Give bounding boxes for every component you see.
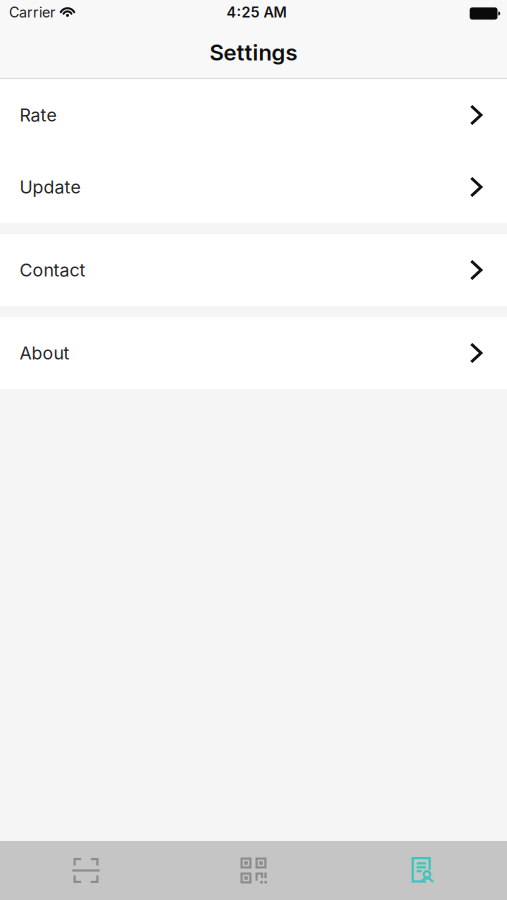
staticText: About: [19, 342, 69, 364]
button[interactable]: History: [338, 841, 507, 900]
button[interactable]: Scan: [0, 841, 169, 900]
staticText: Contact: [19, 259, 85, 281]
button[interactable]: Generate QR Code: [169, 841, 338, 900]
staticText: Settings: [209, 39, 297, 66]
button[interactable]: Contact: [0, 234, 507, 306]
staticText: Rate: [19, 104, 56, 126]
staticText: 4:25 AM: [226, 4, 286, 21]
staticText: Update: [19, 176, 80, 198]
staticText: Carrier: [9, 4, 55, 21]
button[interactable]: About: [0, 317, 507, 389]
button[interactable]: Update: [0, 151, 507, 223]
button[interactable]: Rate: [0, 79, 507, 151]
